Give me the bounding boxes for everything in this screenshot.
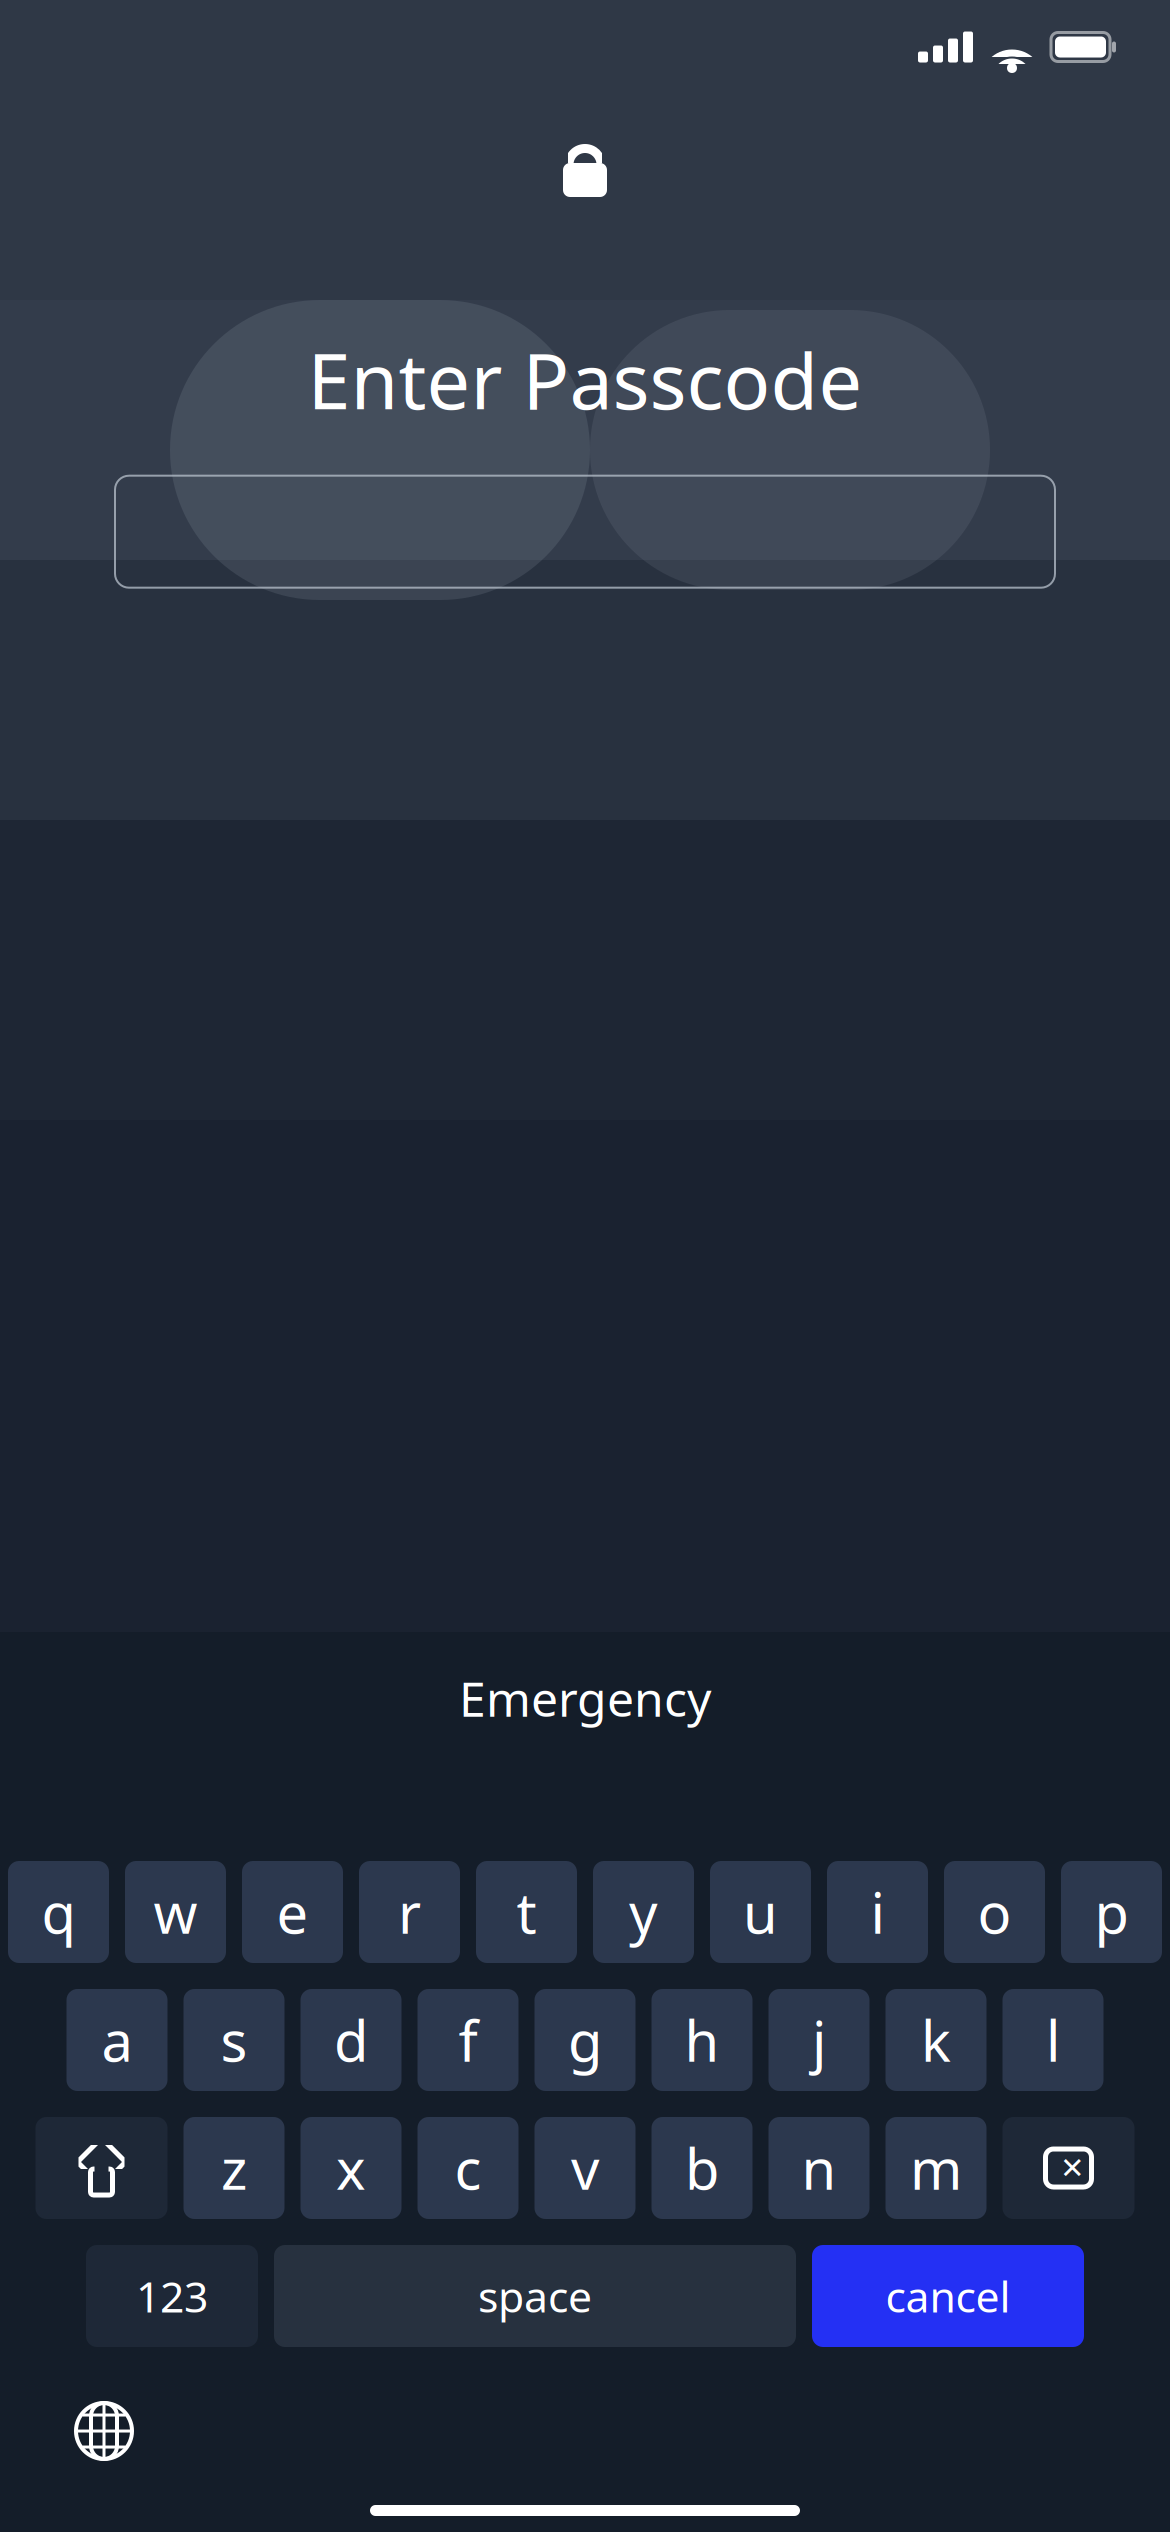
button[interactable]: o xyxy=(944,1861,1045,1963)
staticText: t xyxy=(516,1875,536,1949)
staticText: i xyxy=(870,1875,884,1949)
staticText: f xyxy=(458,2003,477,2077)
button[interactable]: v xyxy=(534,2117,635,2219)
staticText: x xyxy=(336,2131,366,2205)
button[interactable]: x xyxy=(300,2117,401,2219)
button[interactable]: s xyxy=(183,1989,284,2091)
staticText: l xyxy=(1046,2003,1060,2077)
staticText: s xyxy=(220,2003,247,2077)
staticText: z xyxy=(221,2131,247,2205)
staticText: b xyxy=(685,2131,719,2205)
staticText: j xyxy=(812,2003,826,2077)
staticText: m xyxy=(910,2131,962,2205)
button[interactable]: a xyxy=(66,1989,167,2091)
button[interactable]: p xyxy=(1061,1861,1162,1963)
button[interactable]: k xyxy=(885,1989,986,2091)
staticText: 123 xyxy=(136,2268,208,2324)
button[interactable]: r xyxy=(359,1861,460,1963)
button[interactable]: n xyxy=(768,2117,869,2219)
staticText: Enter Passcode xyxy=(307,328,862,431)
staticText: q xyxy=(41,1875,75,1949)
button[interactable]: cancel xyxy=(812,2245,1084,2347)
staticText: e xyxy=(276,1875,308,1949)
staticText: ✕ xyxy=(1060,2151,1085,2185)
button[interactable]: h xyxy=(651,1989,752,2091)
button[interactable]: u xyxy=(710,1861,811,1963)
staticText: k xyxy=(921,2003,951,2077)
button[interactable]: space xyxy=(274,2245,796,2347)
staticText: d xyxy=(334,2003,368,2077)
button[interactable]: w xyxy=(125,1861,226,1963)
staticText: w xyxy=(153,1875,197,1949)
button[interactable]: Change keyboard xyxy=(58,2385,150,2477)
button[interactable]: Emergency xyxy=(419,1650,751,1746)
staticText: g xyxy=(568,2003,602,2077)
button[interactable]: f xyxy=(417,1989,518,2091)
staticText: c xyxy=(454,2131,481,2205)
button[interactable]: m xyxy=(885,2117,986,2219)
button[interactable]: 123 xyxy=(86,2245,258,2347)
staticText: u xyxy=(743,1875,778,1949)
button[interactable]: y xyxy=(593,1861,694,1963)
button[interactable]: d xyxy=(300,1989,401,2091)
button[interactable]: e xyxy=(242,1861,343,1963)
button[interactable]: Delete xyxy=(1002,2117,1134,2219)
staticText: h xyxy=(684,2003,719,2077)
button[interactable]: b xyxy=(651,2117,752,2219)
staticText: y xyxy=(629,1875,658,1949)
button[interactable]: i xyxy=(827,1861,928,1963)
button[interactable]: c xyxy=(417,2117,518,2219)
staticText: r xyxy=(398,1875,421,1949)
staticText: cancel xyxy=(885,2268,1010,2324)
staticText: o xyxy=(977,1875,1011,1949)
button[interactable]: z xyxy=(183,2117,284,2219)
button[interactable]: g xyxy=(534,1989,635,2091)
staticText: space xyxy=(478,2268,592,2324)
button[interactable]: Shift xyxy=(35,2117,167,2219)
staticText: Emergency xyxy=(459,1666,711,1730)
staticText: v xyxy=(571,2131,599,2205)
button[interactable]: l xyxy=(1002,1989,1103,2091)
button[interactable]: j xyxy=(768,1989,869,2091)
staticText: p xyxy=(1094,1875,1128,1949)
staticText: a xyxy=(101,2003,132,2077)
staticText: n xyxy=(801,2131,836,2205)
button[interactable]: t xyxy=(476,1861,577,1963)
button[interactable]: q xyxy=(8,1861,109,1963)
